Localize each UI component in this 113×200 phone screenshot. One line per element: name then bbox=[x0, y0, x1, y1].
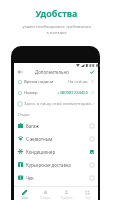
staticText: Багаж bbox=[26, 123, 39, 129]
staticText: Профиль bbox=[61, 196, 73, 200]
button[interactable]: Кондиционер bbox=[14, 145, 98, 158]
button[interactable]: Profile bbox=[56, 187, 77, 200]
staticText: Здесь я пишу свой комментарий... bbox=[24, 101, 94, 107]
staticText: укажи необходимые требования к поездке bbox=[0, 23, 113, 35]
button[interactable]: Чек bbox=[14, 171, 98, 184]
staticText: Кондиционер bbox=[26, 149, 56, 155]
button[interactable]: Menu bbox=[77, 187, 98, 200]
staticText: Ещё bbox=[85, 196, 91, 200]
staticText: Время подачи bbox=[24, 79, 54, 85]
button[interactable]: Курьерская доставка bbox=[14, 158, 98, 171]
button[interactable]: History bbox=[35, 187, 56, 200]
staticText: Чек bbox=[26, 175, 34, 181]
button[interactable]: Здесь я пишу свой комментарий... bbox=[14, 98, 98, 109]
button[interactable]: Номер bbox=[14, 87, 98, 98]
button[interactable]: Багаж bbox=[14, 119, 98, 132]
staticText: Опции bbox=[18, 112, 30, 117]
staticText: На сейчас bbox=[68, 79, 89, 85]
staticText: Номер bbox=[24, 90, 38, 96]
staticText: С животным bbox=[26, 136, 53, 142]
staticText: Дополнительно bbox=[35, 69, 69, 75]
button[interactable]: Order bbox=[14, 187, 35, 200]
staticText: Удобства bbox=[0, 7, 113, 19]
staticText: Поездки bbox=[40, 196, 51, 200]
button[interactable]: Back bbox=[16, 68, 24, 76]
staticText: +380987234455 bbox=[57, 90, 89, 96]
staticText: Курьерская доставка bbox=[26, 162, 71, 168]
button[interactable]: С животным bbox=[14, 132, 98, 145]
staticText: Заказ bbox=[21, 196, 28, 200]
button[interactable]: Время подачи bbox=[14, 76, 98, 87]
button[interactable]: Done bbox=[88, 68, 96, 76]
